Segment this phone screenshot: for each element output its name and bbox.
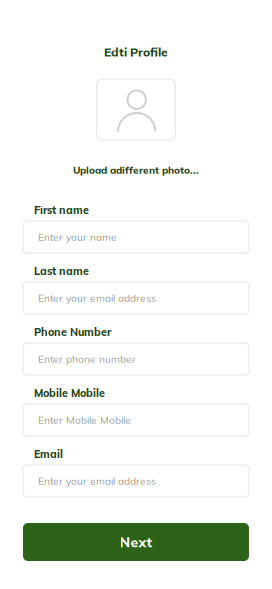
- staticText: Edti Profile: [104, 44, 168, 60]
- button[interactable]: Enter your name: [23, 221, 249, 253]
- staticText: Mobile Mobile: [34, 386, 105, 400]
- staticText: Enter your name: [38, 231, 117, 243]
- button[interactable]: Next: [23, 523, 249, 561]
- button[interactable]: Enter Mobile Mobile: [23, 404, 249, 436]
- staticText: Upload adifferent photo...: [73, 164, 199, 176]
- staticText: Email: [34, 447, 63, 461]
- staticText: Enter your email address: [38, 475, 156, 487]
- staticText: Enter phone number: [38, 353, 136, 365]
- button[interactable]: Change profile photo: [96, 79, 175, 140]
- staticText: Phone Number: [34, 325, 111, 339]
- button[interactable]: Upload adifferent photo...: [73, 165, 199, 175]
- button[interactable]: Enter your email address: [23, 282, 249, 314]
- button[interactable]: Enter phone number: [23, 343, 249, 375]
- staticText: Next: [119, 533, 152, 551]
- staticText: Last name: [34, 264, 89, 278]
- staticText: First name: [34, 203, 89, 217]
- button[interactable]: Enter your email address: [23, 465, 249, 497]
- staticText: Enter your email address: [38, 292, 156, 304]
- staticText: Enter Mobile Mobile: [38, 414, 131, 426]
